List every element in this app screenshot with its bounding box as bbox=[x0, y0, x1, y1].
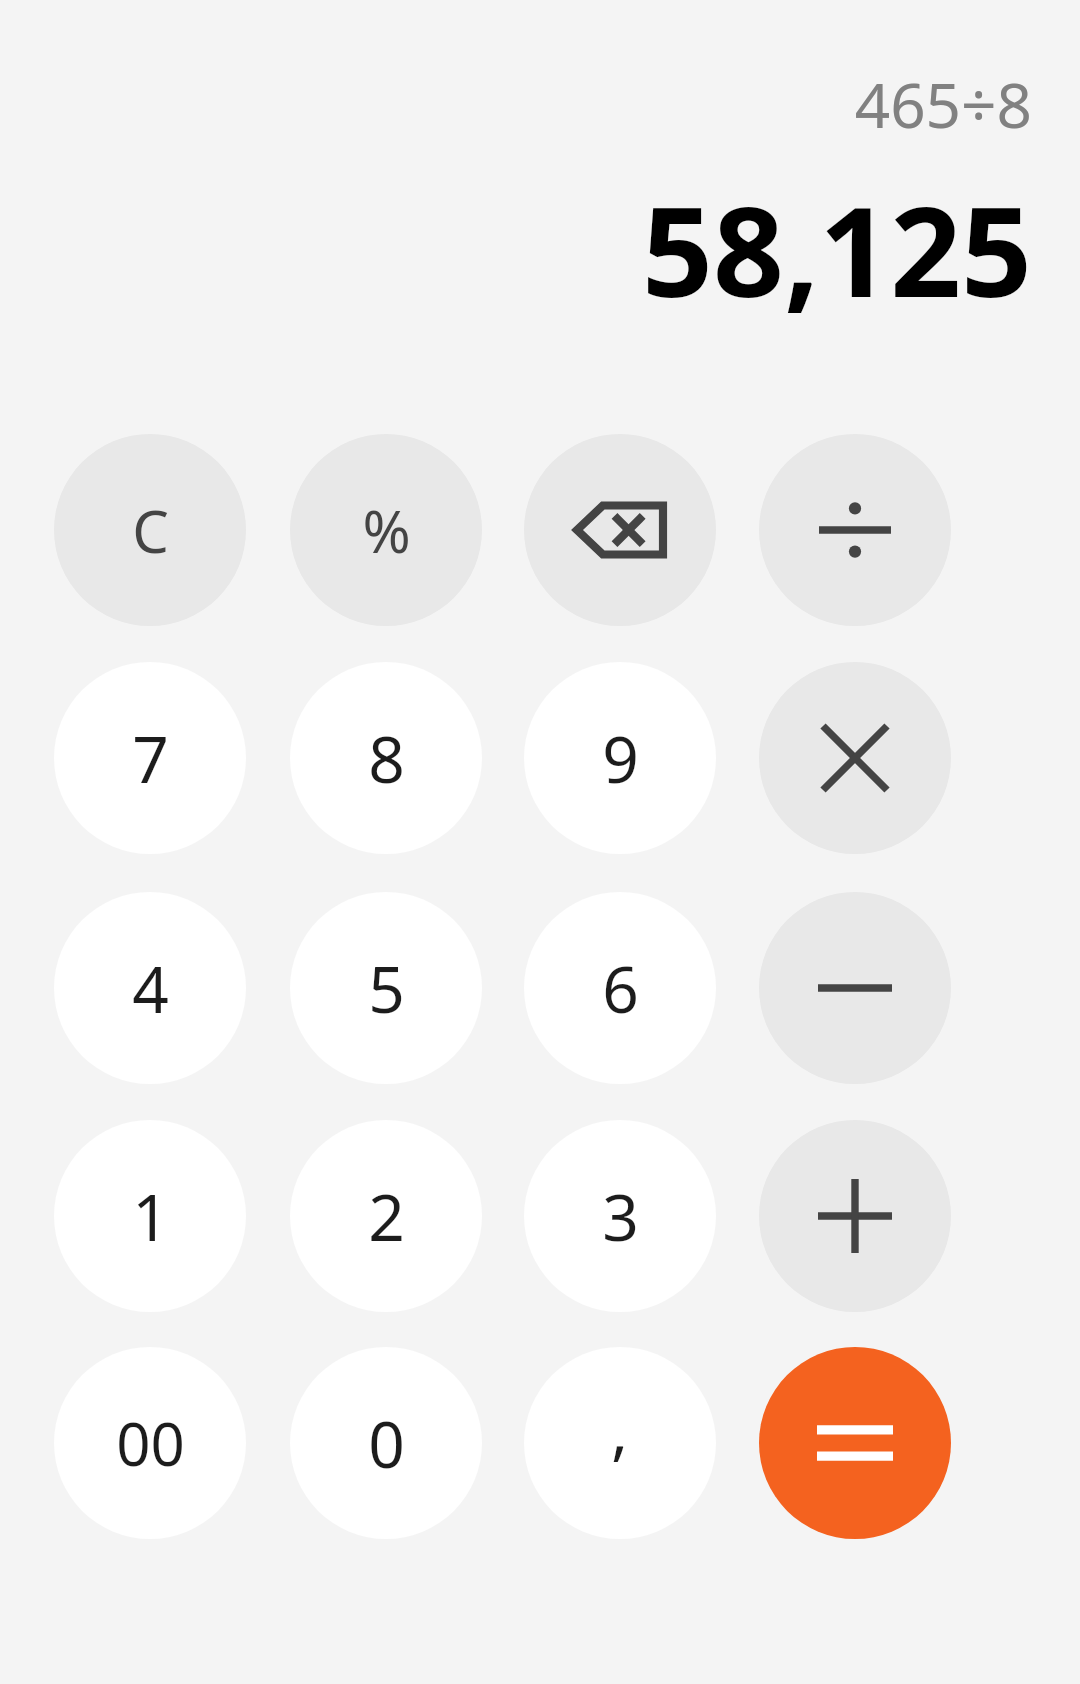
staticText: 4 bbox=[132, 945, 169, 1032]
button[interactable]: Minus bbox=[759, 892, 951, 1084]
staticText: 2 bbox=[368, 1173, 405, 1260]
staticText: 3 bbox=[602, 1173, 639, 1260]
staticText: 465÷8 bbox=[854, 62, 1032, 146]
button[interactable]: 8 bbox=[290, 662, 482, 854]
button[interactable]: 00 bbox=[54, 1347, 246, 1539]
button[interactable]: 5 bbox=[290, 892, 482, 1084]
staticText: 8 bbox=[368, 715, 405, 802]
button[interactable]: Multiply bbox=[759, 662, 951, 854]
staticText: 1 bbox=[132, 1173, 169, 1260]
button[interactable]: 7 bbox=[54, 662, 246, 854]
staticText: , bbox=[611, 1386, 629, 1473]
button[interactable]: 6 bbox=[524, 892, 716, 1084]
staticText: % bbox=[362, 491, 411, 570]
button[interactable]: Divide bbox=[759, 434, 951, 626]
staticText: 5 bbox=[368, 945, 405, 1032]
button[interactable]: 3 bbox=[524, 1120, 716, 1312]
button[interactable]: 1 bbox=[54, 1120, 246, 1312]
button[interactable]: % bbox=[290, 434, 482, 626]
button[interactable]: 9 bbox=[524, 662, 716, 854]
button[interactable]: , bbox=[524, 1347, 716, 1539]
staticText: 0 bbox=[368, 1400, 405, 1487]
staticText: 9 bbox=[602, 715, 639, 802]
button[interactable]: 4 bbox=[54, 892, 246, 1084]
staticText: 6 bbox=[602, 945, 639, 1032]
button[interactable]: 2 bbox=[290, 1120, 482, 1312]
staticText: 7 bbox=[132, 715, 169, 802]
button[interactable]: Plus bbox=[759, 1120, 951, 1312]
button[interactable]: C bbox=[54, 434, 246, 626]
staticText: 58,125 bbox=[642, 164, 1032, 333]
button[interactable]: Backspace bbox=[524, 434, 716, 626]
staticText: C bbox=[132, 491, 169, 570]
button[interactable]: 0 bbox=[290, 1347, 482, 1539]
staticText: 00 bbox=[116, 1402, 185, 1484]
button[interactable]: Equals bbox=[759, 1347, 951, 1539]
